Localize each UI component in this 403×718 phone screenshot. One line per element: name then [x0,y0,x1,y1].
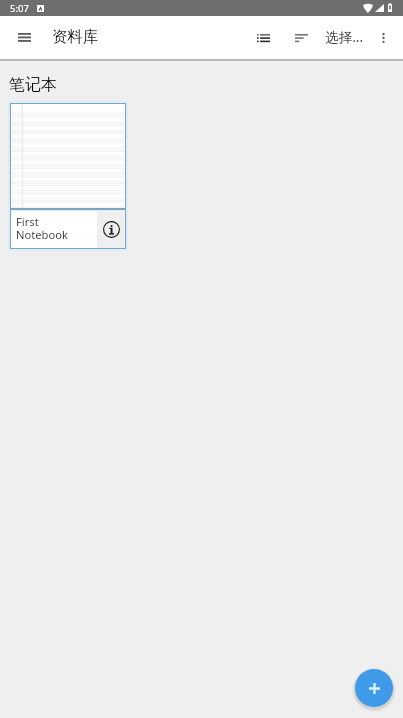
staticText: First Notebook [16,214,69,242]
button[interactable]: Navigation menu [8,16,40,59]
button[interactable]: More options [369,16,397,59]
button[interactable]: View mode [247,16,279,59]
button[interactable]: Add notebook [355,669,393,707]
button[interactable]: First Notebook [10,103,126,249]
staticText: 资料库 [52,27,99,47]
button[interactable]: 选择... [320,16,368,59]
button[interactable]: Notebook info [97,211,125,248]
staticText: 5:07 [10,2,29,15]
staticText: 笔记本 [9,75,57,95]
button[interactable]: Sort [285,16,317,59]
staticText: 选择... [325,27,364,46]
